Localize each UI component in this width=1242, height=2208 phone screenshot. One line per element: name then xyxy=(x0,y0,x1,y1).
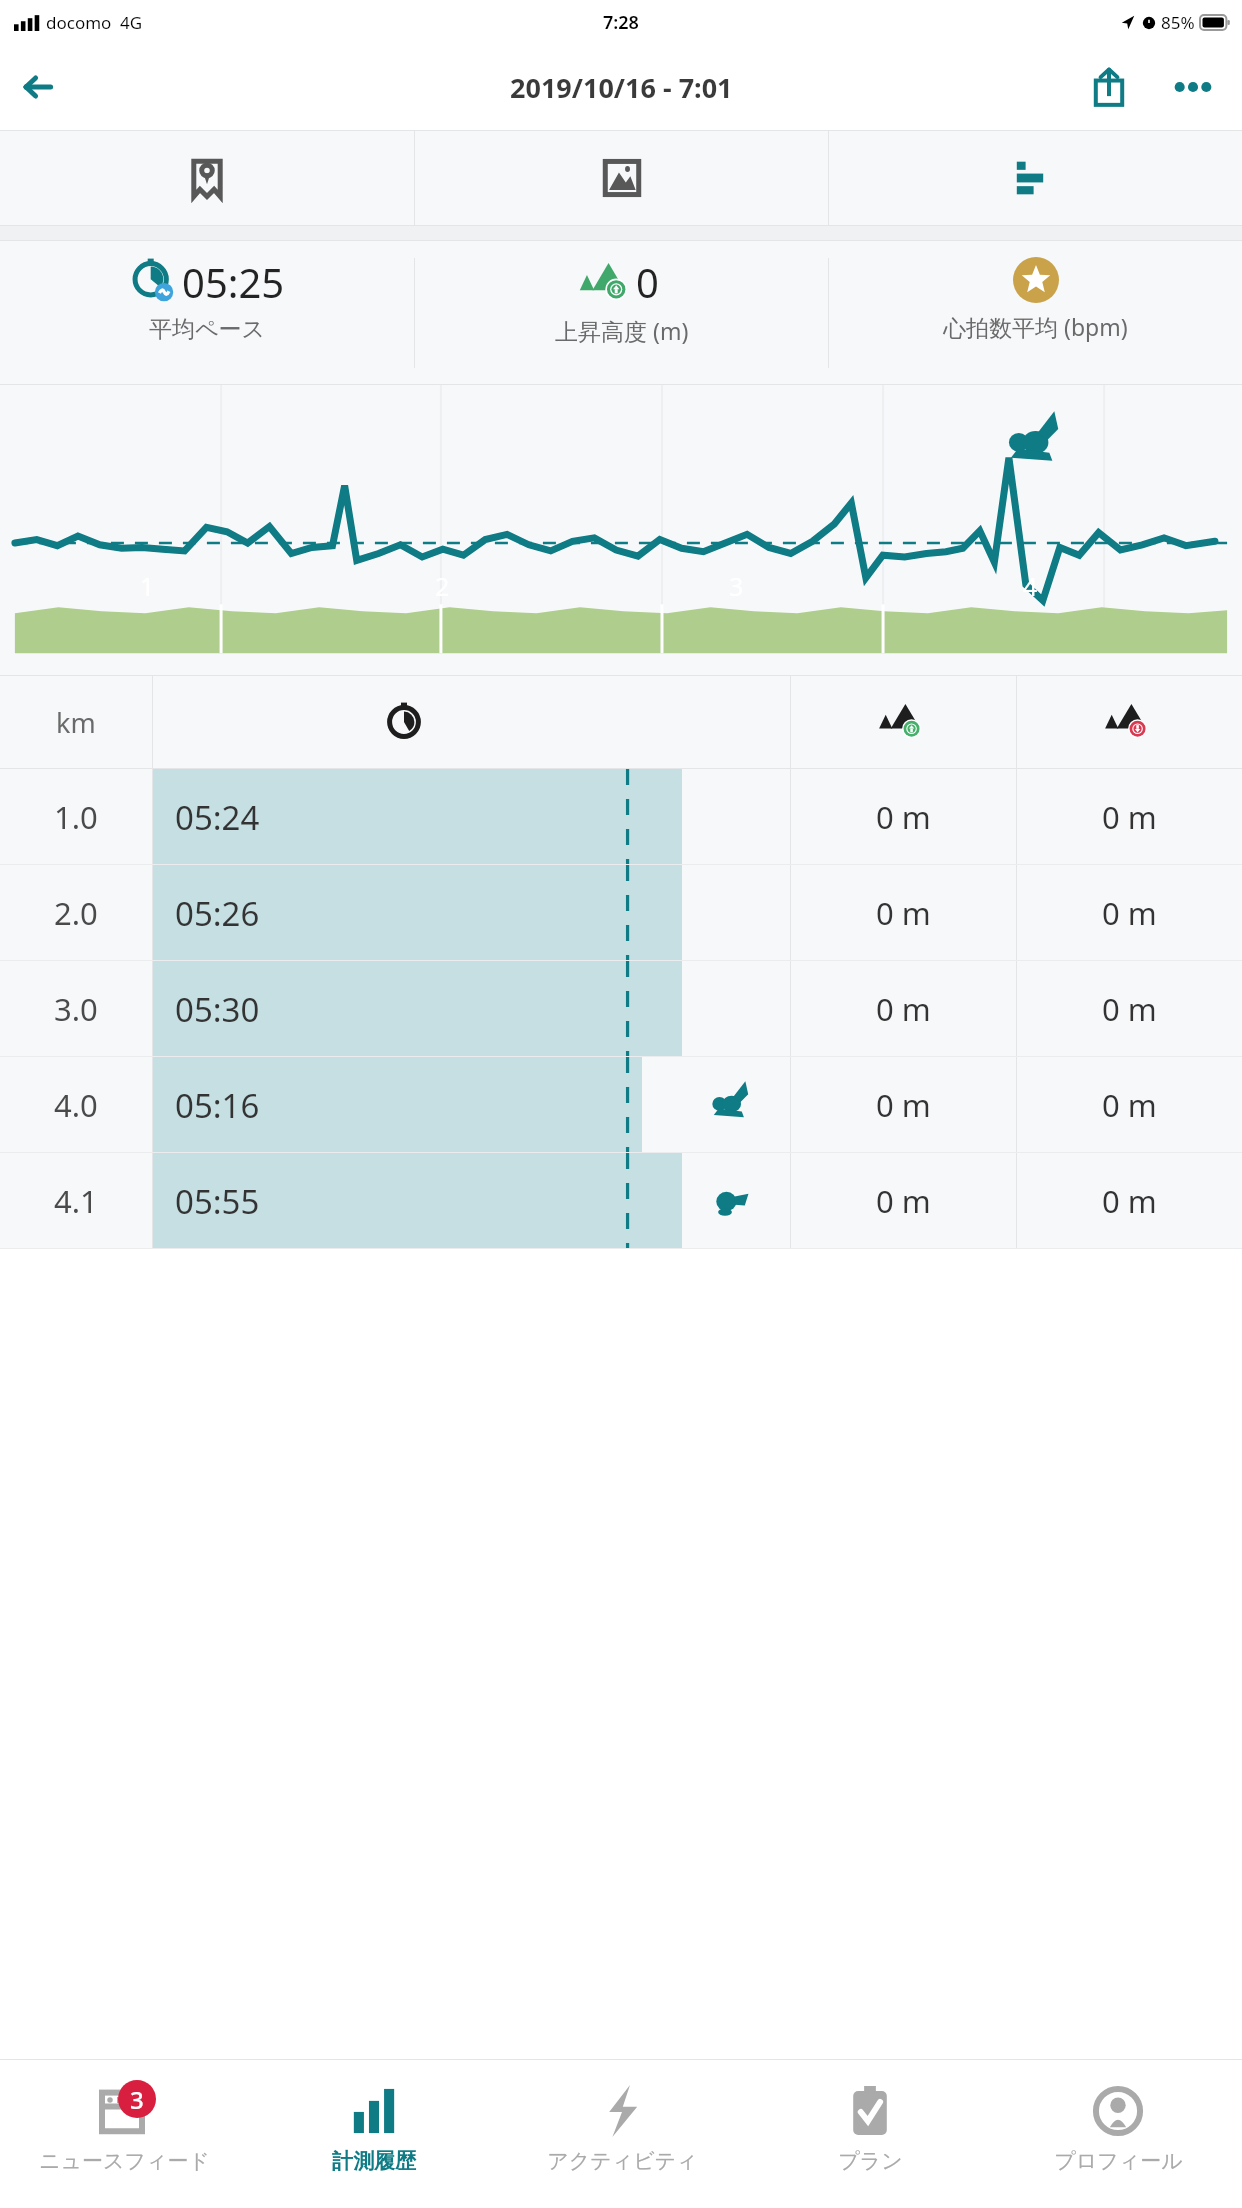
staticText: 0 m xyxy=(1102,988,1157,1030)
button[interactable]: アクティビティ xyxy=(498,2060,746,2208)
staticText: 05:55 xyxy=(175,1179,260,1224)
staticText: 4G xyxy=(120,11,143,34)
staticText: 1.0 xyxy=(54,796,98,838)
button[interactable]: Photos xyxy=(415,131,828,225)
staticText: 計測履歴 xyxy=(332,2148,416,2174)
button[interactable]: プロフィール xyxy=(994,2060,1242,2208)
staticText: 2019/10/16 - 7:01 xyxy=(510,69,733,106)
button[interactable]: 4.1 xyxy=(0,1153,1242,1249)
staticText: 0 m xyxy=(1102,796,1157,838)
staticText: 0 m xyxy=(1102,892,1157,934)
staticText: 0 m xyxy=(876,1180,931,1222)
staticText: 05:30 xyxy=(175,987,260,1032)
staticText: 0 m xyxy=(876,988,931,1030)
button[interactable]: 2.0 xyxy=(0,865,1242,961)
staticText: 平均ペース xyxy=(149,315,266,344)
staticText: 0 m xyxy=(1102,1180,1157,1222)
button[interactable]: 1.0 xyxy=(0,769,1242,865)
button[interactable]: Share xyxy=(1078,56,1140,118)
staticText: 05:25 xyxy=(182,255,285,309)
staticText: 2.0 xyxy=(54,892,98,934)
button[interactable]: Splits xyxy=(829,131,1242,225)
staticText: 0 m xyxy=(876,1084,931,1126)
staticText: 3 xyxy=(130,2083,144,2116)
staticText: アクティビティ xyxy=(547,2148,698,2174)
staticText: ニュースフィード xyxy=(39,2148,210,2174)
staticText: 0 m xyxy=(876,892,931,934)
staticText: 05:16 xyxy=(175,1083,260,1128)
button[interactable]: 心拍数平均 (bpm) xyxy=(829,241,1242,384)
staticText: 0 m xyxy=(1102,1084,1157,1126)
staticText: 2 xyxy=(435,569,450,603)
staticText: 0 xyxy=(636,255,659,309)
staticText: プロフィール xyxy=(1054,2148,1183,2174)
staticText: 上昇高度 (m) xyxy=(555,315,689,346)
button[interactable]: 3 xyxy=(0,2060,249,2208)
staticText: 3.0 xyxy=(54,988,98,1030)
staticText: 05:24 xyxy=(175,795,260,840)
staticText: docomo xyxy=(46,11,112,34)
staticText: 4.1 xyxy=(54,1180,98,1222)
button[interactable]: More options xyxy=(1162,56,1224,118)
button[interactable]: 05:25 xyxy=(0,241,414,384)
button[interactable]: Map xyxy=(0,131,414,225)
staticText: 05:26 xyxy=(175,891,260,936)
button[interactable]: 0 xyxy=(415,241,828,384)
staticText: 85% xyxy=(1161,11,1195,34)
staticText: 4.0 xyxy=(54,1084,98,1126)
staticText: 7:28 xyxy=(603,10,639,35)
button[interactable]: 3.0 xyxy=(0,961,1242,1057)
staticText: 心拍数平均 (bpm) xyxy=(943,311,1128,342)
staticText: プラン xyxy=(838,2148,903,2174)
button[interactable]: 計測履歴 xyxy=(249,2060,498,2208)
staticText: 4 xyxy=(1023,569,1038,603)
button[interactable]: 4.0 xyxy=(0,1057,1242,1153)
button[interactable]: プラン xyxy=(746,2060,994,2208)
staticText: km xyxy=(56,704,96,741)
staticText: 0 m xyxy=(876,796,931,838)
button[interactable]: Back xyxy=(8,57,68,117)
